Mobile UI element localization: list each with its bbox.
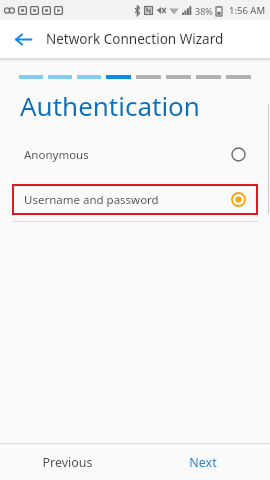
- button[interactable]: Anonymous: [12, 139, 258, 170]
- staticText: Previous: [42, 454, 93, 471]
- button[interactable]: Back: [6, 22, 40, 56]
- button[interactable]: Next: [135, 444, 270, 480]
- staticText: 38%: [195, 5, 213, 17]
- button[interactable]: Previous: [0, 444, 135, 480]
- button[interactable]: Username and password: [12, 184, 258, 215]
- staticText: 1:56 AM: [229, 4, 266, 17]
- staticText: Authentication: [20, 88, 270, 123]
- staticText: Username and password: [24, 192, 231, 208]
- staticText: Anonymous: [24, 147, 231, 163]
- staticText: Next: [189, 454, 217, 471]
- staticText: Network Connection Wizard: [46, 30, 224, 48]
